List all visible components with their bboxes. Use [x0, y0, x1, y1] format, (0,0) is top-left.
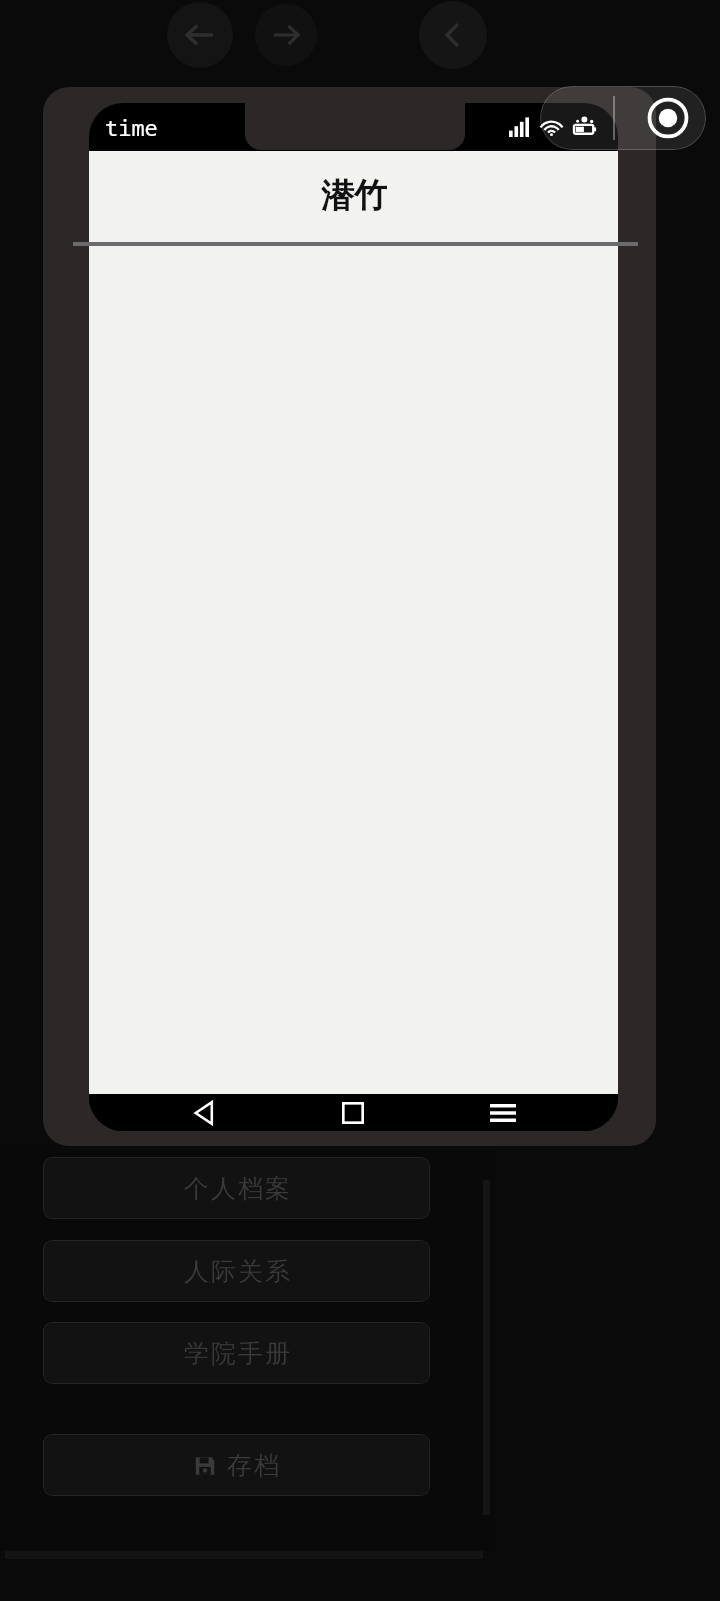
button[interactable]: 个人档案	[43, 1157, 430, 1219]
button[interactable]: Home	[278, 1094, 428, 1131]
button[interactable]: Menu	[428, 1094, 578, 1131]
button[interactable]: Back	[129, 1094, 278, 1131]
staticText: 人际关系	[183, 1256, 291, 1287]
button[interactable]: 存档	[43, 1434, 430, 1496]
button[interactable]: 学院手册	[43, 1322, 430, 1384]
staticText: 学院手册	[183, 1338, 291, 1369]
staticText: time	[105, 112, 158, 142]
staticText: 存档	[226, 1450, 280, 1481]
staticText: 个人档案	[183, 1173, 291, 1204]
button[interactable]: Record	[646, 96, 690, 140]
button[interactable]: Collapse	[419, 1, 487, 69]
button[interactable]: Back	[167, 2, 233, 68]
button[interactable]: 人际关系	[43, 1240, 430, 1302]
button[interactable]: Forward	[255, 4, 317, 66]
staticText: 潜竹	[321, 175, 387, 217]
